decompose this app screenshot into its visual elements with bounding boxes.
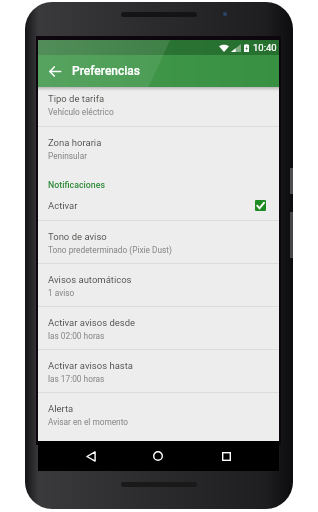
- button[interactable]: Tono de aviso: [38, 221, 279, 263]
- button[interactable]: Navigate up: [38, 55, 72, 87]
- staticText: Tono de aviso: [48, 231, 107, 242]
- button[interactable]: Activar: [38, 190, 279, 220]
- button[interactable]: Activar avisos hasta: [38, 350, 279, 392]
- button[interactable]: Recent apps: [216, 446, 236, 466]
- staticText: las 17:00 horas: [48, 374, 105, 384]
- button[interactable]: Back: [81, 446, 101, 466]
- staticText: Activar avisos desde: [48, 317, 136, 328]
- button[interactable]: Tipo de tarifa: [38, 87, 279, 129]
- staticText: Peninsular: [48, 151, 87, 161]
- staticText: Activar avisos hasta: [48, 360, 134, 371]
- button[interactable]: Alerta: [38, 393, 279, 435]
- staticText: Notificaciones: [48, 180, 105, 190]
- staticText: Alerta: [48, 403, 74, 414]
- staticText: Tono predeterminado (Pixie Dust): [48, 245, 172, 255]
- staticText: Preferencias: [72, 64, 141, 78]
- button[interactable]: Avisos automáticos: [38, 264, 279, 306]
- staticText: Avisos automáticos: [48, 274, 132, 285]
- button[interactable]: Home: [148, 446, 168, 466]
- staticText: las 02:00 horas: [48, 331, 105, 341]
- staticText: 1 aviso: [48, 288, 75, 298]
- button[interactable]: Zona horaria: [38, 127, 279, 169]
- staticText: Vehículo eléctrico: [48, 107, 114, 117]
- staticText: Avisar en el momento: [48, 417, 129, 427]
- button[interactable]: Activar avisos desde: [38, 307, 279, 349]
- staticText: Tipo de tarifa: [48, 93, 105, 104]
- staticText: 10:40: [253, 42, 277, 53]
- staticText: Activar: [48, 200, 78, 211]
- staticText: Zona horaria: [48, 137, 102, 148]
